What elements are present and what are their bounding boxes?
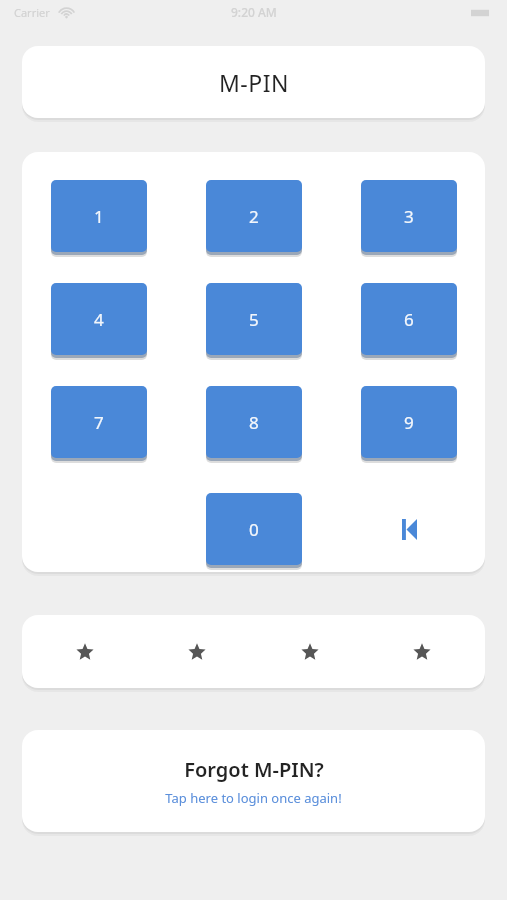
button[interactable]: PIN digit [295, 637, 325, 667]
button[interactable]: 1 [51, 180, 147, 252]
button[interactable]: Backspace [361, 493, 457, 565]
button[interactable]: M-PIN [22, 46, 485, 118]
staticText: 6 [404, 308, 414, 331]
button[interactable]: 8 [206, 386, 302, 458]
staticText: 4 [94, 308, 104, 331]
staticText: 9:20 AM [231, 4, 277, 20]
button[interactable]: 7 [51, 386, 147, 458]
button[interactable]: PIN digit [182, 637, 212, 667]
button[interactable]: 0 [206, 493, 302, 565]
button[interactable]: Forgot M-PIN? [22, 730, 485, 832]
staticText: Carrier [14, 5, 50, 20]
staticText: Tap here to login once again! [165, 789, 342, 807]
staticText: M-PIN [219, 67, 289, 98]
button[interactable]: PIN digit [70, 637, 100, 667]
staticText: 9 [404, 411, 414, 434]
button[interactable]: 6 [361, 283, 457, 355]
staticText: 1 [94, 205, 104, 228]
button[interactable]: PIN digit [407, 637, 437, 667]
staticText: 3 [404, 205, 414, 228]
button[interactable]: 3 [361, 180, 457, 252]
staticText: 0 [249, 518, 259, 541]
staticText: 7 [94, 411, 104, 434]
button[interactable]: 5 [206, 283, 302, 355]
button[interactable]: 4 [51, 283, 147, 355]
button[interactable]: 9 [361, 386, 457, 458]
staticText: 8 [249, 411, 259, 434]
staticText: 2 [249, 205, 259, 228]
staticText: Forgot M-PIN? [184, 756, 324, 783]
staticText: 5 [249, 308, 259, 331]
button[interactable]: 2 [206, 180, 302, 252]
